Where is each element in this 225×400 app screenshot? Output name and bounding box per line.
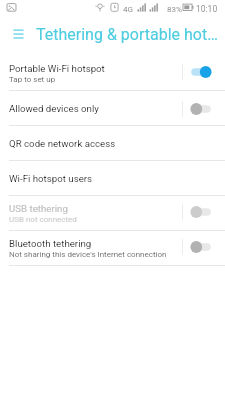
button[interactable]: Allowed devices only [0,91,225,126]
staticText: QR code network access [9,138,116,149]
button[interactable]: QR code network access [0,126,225,161]
staticText: 83% [167,5,182,14]
button[interactable]: Navigation menu [0,18,36,50]
staticText: 10:10 [196,4,218,14]
button[interactable]: USB tethering [0,196,225,231]
staticText: Tap to set up [9,75,56,84]
button[interactable]: Bluetooth tethering [0,231,225,266]
staticText: USB not connected [9,215,77,224]
button[interactable]: Portable Wi-Fi hotspot [0,56,225,91]
staticText: Portable Wi-Fi hotspot [9,63,105,74]
staticText: Tethering & portable hot… [36,25,218,44]
staticText: Allowed devices only [9,103,99,114]
staticText: Bluetooth tethering [9,238,92,249]
button[interactable]: Wi-Fi hotspot users [0,161,225,196]
staticText: USB tethering [9,203,68,214]
staticText: Wi-Fi hotspot users [9,173,93,184]
staticText: Not sharing this device's Internet conne… [9,250,167,259]
staticText: 4G [123,5,133,14]
